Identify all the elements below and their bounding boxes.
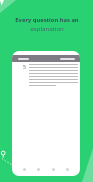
button[interactable]: Tab bbox=[52, 168, 55, 171]
staticText: explanation bbox=[30, 24, 64, 32]
staticText: Every question has an bbox=[15, 16, 79, 24]
button[interactable]: Tab bbox=[37, 168, 40, 171]
button[interactable]: Tab bbox=[66, 168, 69, 171]
button[interactable]: Tab bbox=[23, 168, 26, 171]
staticText: 5 bbox=[23, 64, 26, 71]
button[interactable] bbox=[12, 55, 80, 62]
